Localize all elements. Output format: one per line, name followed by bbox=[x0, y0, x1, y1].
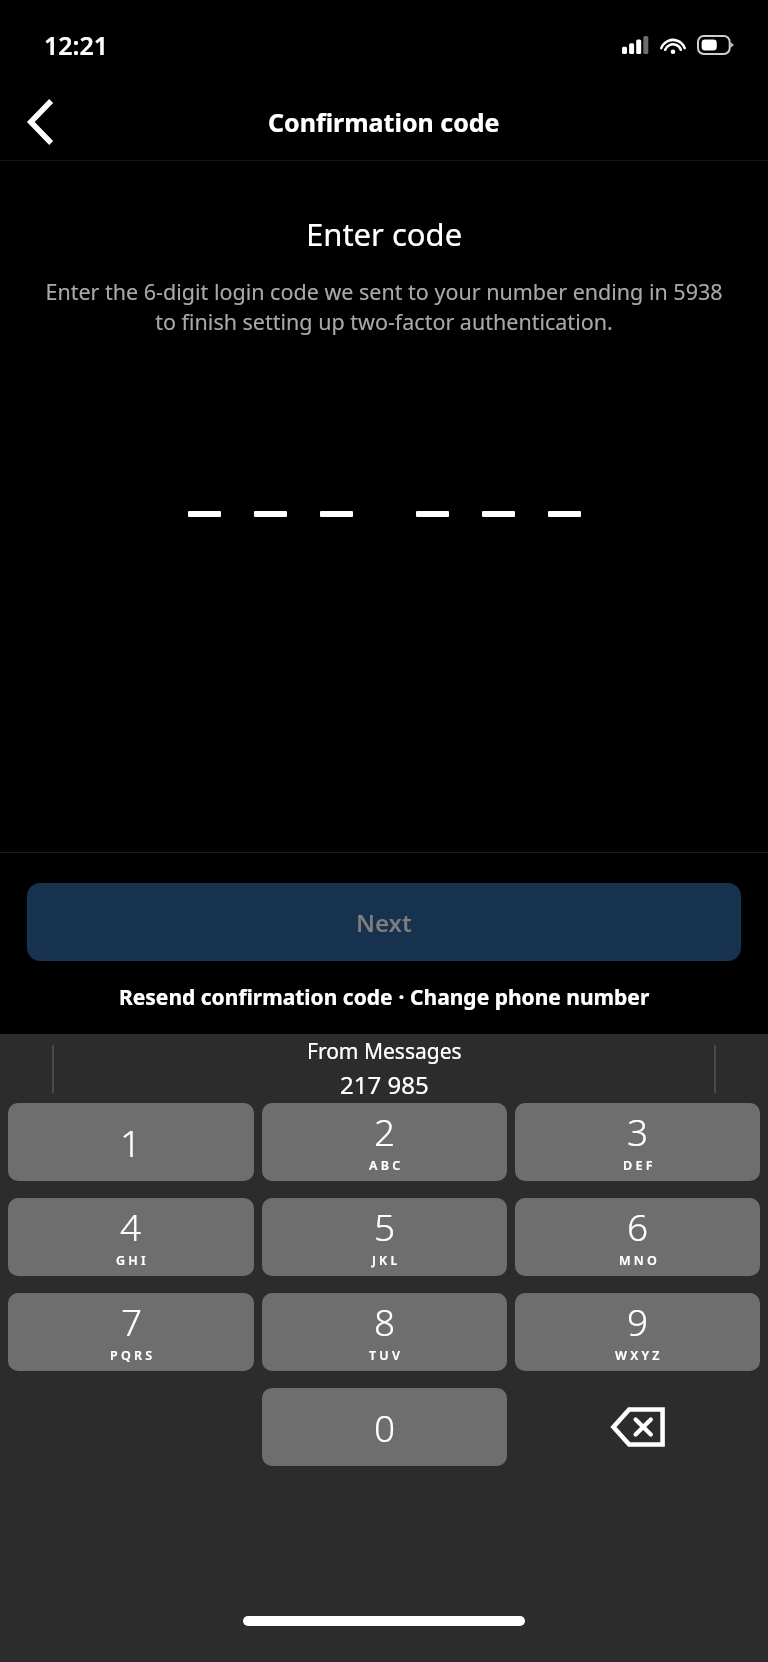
staticText: 5 bbox=[374, 1201, 396, 1251]
staticText: From Messages bbox=[307, 1037, 462, 1066]
button[interactable]: 4 bbox=[8, 1198, 254, 1276]
staticText: 2 bbox=[374, 1106, 396, 1156]
button[interactable]: Back bbox=[8, 90, 72, 154]
staticText: Resend confirmation code bbox=[119, 983, 393, 1012]
button[interactable]: Change phone number bbox=[410, 983, 650, 1012]
staticText: J K L bbox=[372, 1252, 398, 1269]
button[interactable]: 7 bbox=[8, 1293, 254, 1371]
button[interactable]: Next bbox=[27, 883, 741, 961]
button[interactable]: 9 bbox=[515, 1293, 760, 1371]
button[interactable]: 1 bbox=[8, 1103, 254, 1181]
staticText: P Q R S bbox=[110, 1347, 153, 1364]
button[interactable]: 2 bbox=[262, 1103, 507, 1181]
staticText: Change phone number bbox=[410, 983, 650, 1012]
button[interactable]: From Messages bbox=[307, 1037, 462, 1101]
staticText: A B C bbox=[369, 1157, 401, 1174]
button[interactable]: Backspace bbox=[515, 1388, 760, 1466]
staticText: W X Y Z bbox=[615, 1347, 660, 1364]
button[interactable]: 0 bbox=[262, 1388, 507, 1466]
staticText: D E F bbox=[623, 1157, 653, 1174]
button[interactable]: Resend confirmation code bbox=[119, 983, 393, 1012]
staticText: 9 bbox=[627, 1296, 649, 1346]
staticText: G H I bbox=[116, 1252, 146, 1269]
staticText: Enter code bbox=[306, 213, 463, 255]
staticText: · bbox=[393, 983, 410, 1012]
staticText: T U V bbox=[369, 1347, 400, 1364]
staticText: 7 bbox=[121, 1296, 143, 1346]
staticText: 6 bbox=[627, 1201, 649, 1251]
button[interactable]: 8 bbox=[262, 1293, 507, 1371]
staticText: 1 bbox=[120, 1117, 142, 1167]
button[interactable]: 6 bbox=[515, 1198, 760, 1276]
staticText: 217 985 bbox=[340, 1068, 429, 1101]
button[interactable]: 3 bbox=[515, 1103, 760, 1181]
staticText: M N O bbox=[619, 1252, 657, 1269]
staticText: 3 bbox=[627, 1106, 649, 1156]
staticText: 12:21 bbox=[44, 28, 109, 62]
staticText: 0 bbox=[374, 1402, 396, 1452]
button[interactable]: 5 bbox=[262, 1198, 507, 1276]
staticText: 4 bbox=[120, 1201, 142, 1251]
staticText: Enter the 6-digit login code we sent to … bbox=[38, 277, 730, 336]
staticText: Next bbox=[356, 906, 412, 939]
staticText: 8 bbox=[374, 1296, 396, 1346]
staticText: Confirmation code bbox=[268, 105, 500, 139]
